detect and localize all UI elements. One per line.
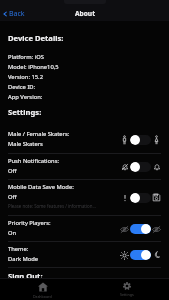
staticText: Settings	[120, 292, 134, 297]
staticText: App Version:	[8, 93, 43, 101]
staticText: Back	[9, 9, 25, 19]
staticText: On	[8, 229, 17, 237]
button[interactable]: Mobile Data Save Mode:	[8, 180, 161, 215]
staticText: Push Notifications:	[8, 157, 59, 165]
button[interactable]: Dashboard	[0, 279, 84, 300]
button[interactable]: Toggle	[130, 135, 151, 145]
staticText: Off	[8, 193, 17, 201]
staticText: Model: iPhone10,5	[8, 63, 59, 71]
button[interactable]: Theme:	[8, 242, 161, 267]
staticText: Please note: Some features / information…	[8, 203, 96, 209]
staticText: Version: 15.2	[8, 73, 43, 81]
staticText: Dashboard	[33, 294, 52, 299]
staticText: Male Skaters	[8, 140, 43, 148]
staticText: Device Details:	[8, 33, 64, 43]
button[interactable]: Toggle	[130, 224, 151, 234]
staticText: Priority Players:	[8, 219, 51, 227]
button[interactable]: Priority Players:	[8, 216, 161, 241]
button[interactable]: Back	[0, 8, 28, 20]
staticText: Dark Mode	[8, 255, 39, 263]
staticText: Mobile Data Save Mode:	[8, 183, 74, 191]
staticText: Theme:	[8, 245, 29, 253]
button[interactable]: Push Notifications:	[8, 154, 161, 179]
staticText: Off	[8, 167, 17, 175]
staticText: Platform: iOS	[8, 53, 44, 61]
staticText: Sign Out:	[8, 271, 43, 278]
button[interactable]: Toggle	[130, 250, 151, 260]
button[interactable]: Settings	[84, 279, 169, 300]
button[interactable]: Toggle	[130, 193, 151, 203]
staticText: Device ID:	[8, 83, 36, 91]
button[interactable]: Toggle	[130, 162, 151, 172]
button[interactable]: Male / Female Skaters:	[8, 127, 161, 153]
staticText: About	[75, 9, 95, 18]
staticText: Male / Female Skaters:	[8, 130, 70, 138]
staticText: Settings:	[8, 107, 42, 117]
